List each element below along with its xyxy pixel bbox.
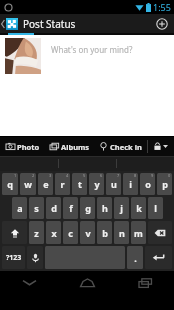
button[interactable]: r [55, 173, 70, 195]
button[interactable]: v [80, 221, 95, 244]
staticText: b [102, 227, 108, 239]
staticText: 5 [83, 173, 86, 178]
button[interactable]: Recent apps [116, 271, 174, 294]
button[interactable]: . [127, 246, 143, 269]
staticText: u [111, 178, 117, 190]
button[interactable]: Home [58, 271, 116, 294]
staticText: 6 [100, 173, 103, 178]
staticText: g [85, 202, 91, 214]
button[interactable]: b [97, 221, 112, 244]
staticText: What's on your mind? [51, 44, 133, 55]
button[interactable]: p [157, 173, 172, 195]
button[interactable]: j [114, 197, 129, 219]
staticText: h [102, 202, 108, 214]
button[interactable]: Backspace [148, 221, 172, 244]
button[interactable]: Profile photo [5, 38, 41, 74]
button[interactable]: u [106, 173, 121, 195]
button[interactable]: w [20, 173, 36, 195]
staticText: a [17, 202, 23, 214]
button[interactable]: Navigate up [0, 14, 18, 33]
button[interactable]: z [29, 221, 44, 244]
staticText: o [145, 178, 151, 190]
staticText: z [34, 227, 39, 239]
staticText: v [85, 227, 91, 239]
staticText: t [78, 178, 82, 190]
staticText: 1:55 [153, 1, 171, 13]
button[interactable]: n [114, 221, 129, 244]
staticText: Post Status [23, 17, 76, 31]
staticText: f [69, 202, 73, 214]
staticText: j [120, 202, 123, 214]
staticText: e [43, 178, 49, 190]
button[interactable]: Voice input [27, 246, 43, 269]
button[interactable]: Hide keyboard [0, 271, 58, 294]
staticText: d [51, 202, 57, 214]
button[interactable]: m [131, 221, 146, 244]
staticText: Albums [61, 142, 90, 152]
staticText: l [154, 202, 157, 214]
button[interactable]: o [140, 173, 155, 195]
staticText: 2 [32, 173, 35, 178]
staticText: c [68, 227, 73, 239]
button[interactable]: g [80, 197, 95, 219]
button[interactable]: s [29, 197, 44, 219]
button[interactable]: y [89, 173, 104, 195]
button[interactable]: ?123 [2, 246, 25, 269]
staticText: s [34, 202, 39, 214]
button[interactable]: c [63, 221, 78, 244]
button[interactable]: i [123, 173, 138, 195]
staticText: Check in [110, 142, 142, 152]
button[interactable]: d [46, 197, 61, 219]
button[interactable]: k [131, 197, 146, 219]
staticText: w [24, 178, 32, 190]
button[interactable]: Enter [145, 246, 172, 269]
staticText: y [94, 178, 100, 190]
button[interactable]: h [97, 197, 112, 219]
staticText: k [136, 202, 142, 214]
staticText: 9 [151, 173, 154, 178]
button[interactable]: Shift [2, 221, 27, 244]
staticText: n [119, 227, 125, 239]
button[interactable]: t [72, 173, 87, 195]
staticText: i [129, 178, 132, 190]
staticText: 8 [134, 173, 137, 178]
button[interactable]: Check in [94, 137, 147, 156]
button[interactable]: q [2, 173, 18, 195]
button[interactable]: Suggestion 1 [0, 156, 58, 171]
staticText: 3 [49, 173, 52, 178]
button[interactable]: a [12, 197, 27, 219]
button[interactable]: Privacy setting [148, 137, 174, 156]
button[interactable]: Profile photo [0, 35, 174, 136]
button[interactable]: l [148, 197, 163, 219]
button[interactable]: Suggestion 2 [59, 156, 116, 171]
staticText: r [60, 178, 65, 190]
staticText: . [134, 252, 137, 264]
staticText: p [162, 178, 168, 190]
button[interactable]: Add [150, 14, 174, 33]
button[interactable]: x [46, 221, 61, 244]
staticText: 0 [168, 173, 171, 178]
button[interactable]: Suggestion 3 [117, 156, 174, 171]
button[interactable]: Albums [46, 137, 94, 156]
button[interactable]: Photo [0, 137, 46, 156]
staticText: q [7, 178, 13, 190]
staticText: x [51, 227, 57, 239]
button[interactable]: e [38, 173, 53, 195]
staticText: Photo [17, 142, 40, 152]
staticText: m [134, 227, 143, 239]
staticText: 1 [14, 173, 17, 178]
staticText: ?123 [6, 253, 22, 263]
staticText: 4 [66, 173, 69, 178]
button[interactable]: f [63, 197, 78, 219]
staticText: 7 [117, 173, 120, 178]
